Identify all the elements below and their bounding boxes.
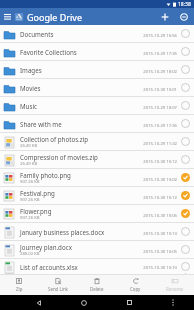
staticText: Journey plan.docx	[20, 243, 72, 251]
staticText: 18:38	[178, 1, 191, 8]
button[interactable]: Open navigation drawer	[0, 8, 14, 25]
staticText: 2015-10-30 10:12	[143, 159, 177, 165]
staticText: Collection of photos.zip	[20, 135, 89, 143]
button[interactable]: Deselect item	[177, 187, 194, 204]
button[interactable]: Back	[30, 295, 48, 310]
staticText: 2015-10-29 16:56	[143, 33, 177, 39]
staticText: 26.49 KB	[20, 161, 38, 167]
button[interactable]: Select item	[177, 115, 194, 132]
button[interactable]: Select item	[177, 79, 194, 96]
staticText: Compression of movies.zip	[20, 153, 98, 161]
staticText: 2015-10-30 10:10	[143, 265, 177, 271]
button[interactable]: Home	[75, 295, 93, 310]
button[interactable]: Recent apps	[120, 295, 138, 310]
button[interactable]: Select item	[177, 133, 194, 150]
staticText: 2015-10-30 10:02	[143, 177, 177, 183]
staticText: Zip	[16, 286, 23, 292]
staticText: 2015-10-30 10:01	[143, 87, 177, 93]
staticText: 2015-10-30 10:13	[143, 231, 177, 237]
button[interactable]: Select item	[177, 43, 194, 60]
button[interactable]: Select item	[177, 97, 194, 114]
staticText: Movies	[20, 84, 41, 92]
button[interactable]: Select item	[177, 151, 194, 168]
button[interactable]: Images	[0, 61, 194, 78]
staticText: Favorite Collections	[20, 48, 77, 56]
staticText: 2015-10-30 10:12	[143, 195, 177, 201]
staticText: Send Link	[48, 286, 68, 292]
staticText: Copy	[130, 286, 141, 292]
button[interactable]: Select item	[177, 241, 194, 258]
button[interactable]: Zip	[0, 274, 38, 295]
staticText: January business places.docx	[20, 228, 105, 236]
button[interactable]: Compression of movies.zip	[0, 151, 194, 168]
button[interactable]: Documents	[0, 25, 194, 42]
button[interactable]: Send Link	[38, 274, 77, 295]
staticText: Google Drive	[27, 11, 82, 23]
staticText: 2015-10-29 17:36	[143, 123, 177, 129]
button[interactable]: More options	[174, 8, 194, 25]
staticText: Festival.png	[20, 189, 55, 197]
button[interactable]: More options	[165, 295, 181, 310]
button[interactable]: Music	[0, 97, 194, 114]
staticText: Rename	[166, 286, 183, 292]
button[interactable]: Family photo.png	[0, 169, 194, 186]
staticText: 2015-10-29 17:35	[143, 51, 177, 57]
button[interactable]: Select item	[177, 61, 194, 78]
staticText: Images	[20, 66, 42, 74]
button[interactable]: Collection of photos.zip	[0, 133, 194, 150]
button[interactable]: January business places.docx	[0, 223, 194, 240]
button[interactable]: Festival.png	[0, 187, 194, 204]
staticText: Flower.png	[20, 207, 52, 215]
staticText: 907.26 KB	[20, 179, 40, 185]
staticText: 907.26 KB	[20, 197, 40, 203]
staticText: 2015-10-30 10:06	[143, 213, 177, 219]
button[interactable]: List of accounts.xlsx	[0, 259, 194, 274]
button[interactable]: Flower.png	[0, 205, 194, 222]
staticText: Family photo.png	[20, 171, 71, 179]
staticText: 2015-10-29 18:02	[143, 69, 177, 75]
staticText: 288.02 KB	[20, 251, 40, 257]
button[interactable]: Select item	[177, 25, 194, 42]
staticText: Delete	[90, 286, 104, 292]
button[interactable]: Movies	[0, 79, 194, 96]
staticText: List of accounts.xlsx	[20, 263, 78, 271]
button[interactable]: Add	[156, 8, 174, 25]
button[interactable]: Rename	[155, 274, 194, 295]
staticText: Music	[20, 102, 37, 110]
staticText: 26.49 KB	[20, 143, 38, 149]
button[interactable]: Deselect item	[177, 169, 194, 186]
staticText: 2015-10-29 11:32	[143, 141, 177, 147]
button[interactable]: Select item	[177, 223, 194, 240]
button[interactable]: Copy	[116, 274, 155, 295]
staticText: 907.26 KB	[20, 215, 40, 221]
button[interactable]: Delete	[77, 274, 116, 295]
staticText: Share with me	[20, 120, 62, 128]
staticText: Documents	[20, 30, 54, 38]
button[interactable]: Select item	[177, 259, 194, 274]
staticText: 2015-10-29 18:07	[143, 105, 177, 111]
button[interactable]: Favorite Collections	[0, 43, 194, 60]
button[interactable]: Journey plan.docx	[0, 241, 194, 258]
staticText: 2015-10-30 10:05	[143, 249, 177, 255]
button[interactable]: Deselect item	[177, 205, 194, 222]
button[interactable]: Share with me	[0, 115, 194, 132]
